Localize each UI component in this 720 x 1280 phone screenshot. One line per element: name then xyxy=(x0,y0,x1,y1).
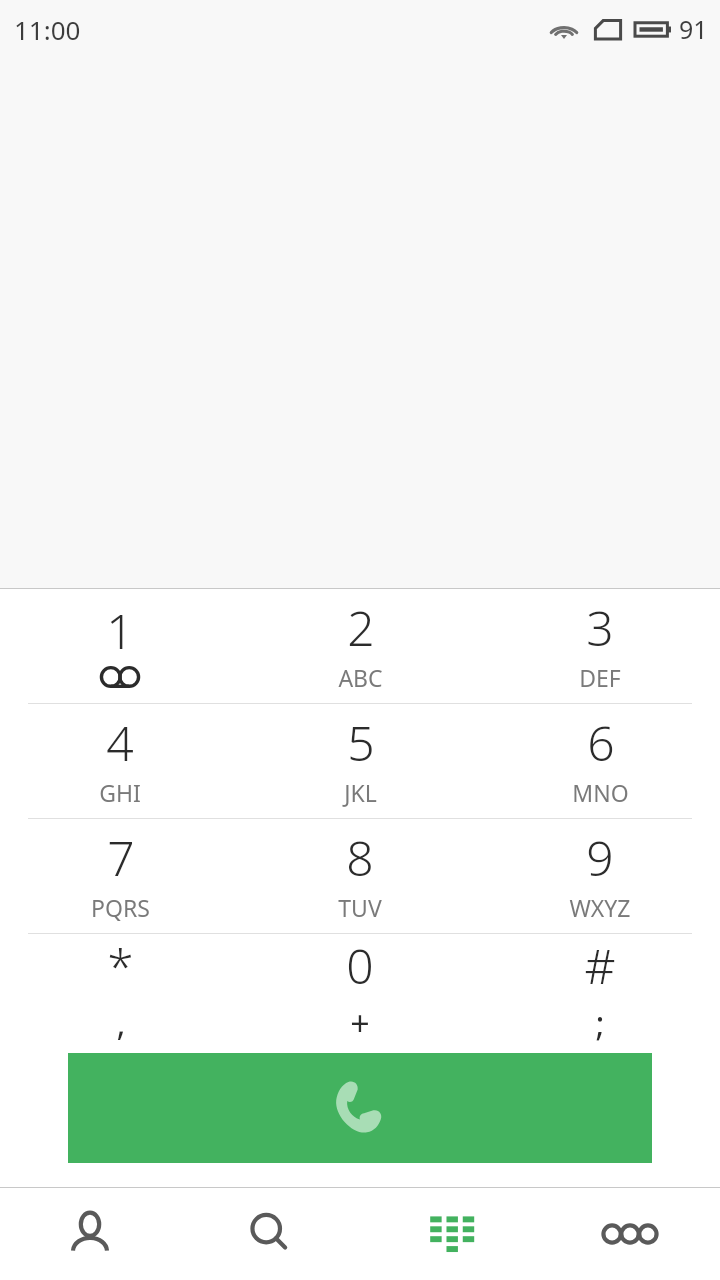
button[interactable]: Call xyxy=(68,1053,652,1163)
button[interactable]: More options xyxy=(540,1188,720,1280)
staticText: ABC xyxy=(338,662,383,693)
staticText: 91 xyxy=(679,12,708,46)
staticText: 2 xyxy=(347,595,375,660)
staticText: 11:00 xyxy=(14,12,81,47)
button[interactable]: 8 xyxy=(240,819,480,933)
staticText: 5 xyxy=(347,710,375,775)
button[interactable]: Dialpad xyxy=(360,1188,540,1280)
button[interactable]: 5 xyxy=(240,704,480,818)
button[interactable]: Contacts xyxy=(0,1188,180,1280)
staticText: # xyxy=(584,933,616,998)
button[interactable]: 7 xyxy=(0,819,240,933)
staticText: ; xyxy=(595,1000,605,1046)
staticText: 4 xyxy=(106,710,134,775)
button[interactable]: 3 xyxy=(480,589,720,703)
staticText: 6 xyxy=(587,710,615,775)
staticText: TUV xyxy=(338,892,382,923)
staticText: 8 xyxy=(346,825,374,890)
staticText: + xyxy=(350,1000,370,1046)
staticText: * xyxy=(107,933,134,998)
button[interactable]: 4 xyxy=(0,704,240,818)
staticText: GHI xyxy=(99,777,141,808)
staticText: PQRS xyxy=(91,892,150,923)
button[interactable]: 0 xyxy=(240,934,480,1048)
button[interactable]: 6 xyxy=(480,704,720,818)
staticText: 0 xyxy=(346,933,374,998)
staticText: DEF xyxy=(579,662,621,693)
staticText: JKL xyxy=(344,777,377,808)
staticText: MNO xyxy=(572,777,629,808)
staticText: , xyxy=(116,1000,126,1046)
staticText: 7 xyxy=(107,825,135,890)
staticText: 3 xyxy=(586,595,614,660)
button[interactable]: 9 xyxy=(480,819,720,933)
button[interactable]: * xyxy=(0,934,240,1048)
button[interactable]: # xyxy=(480,934,720,1048)
button[interactable]: 2 xyxy=(240,589,480,703)
staticText: 9 xyxy=(586,825,614,890)
button[interactable]: 1 xyxy=(0,589,240,703)
button[interactable]: Search xyxy=(180,1188,360,1280)
staticText: 1 xyxy=(106,598,134,663)
staticText: WXYZ xyxy=(569,892,631,923)
